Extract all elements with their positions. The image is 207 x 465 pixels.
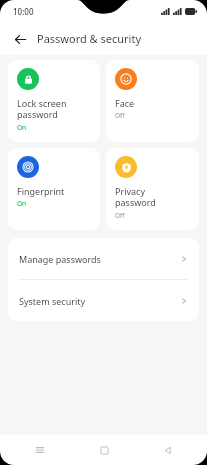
staticText: 10:00	[13, 6, 34, 17]
staticText: Off	[115, 211, 125, 220]
button[interactable]: Manage passwords	[8, 238, 199, 279]
staticText: On	[17, 123, 27, 132]
staticText: On	[17, 199, 27, 208]
staticText: Face	[115, 97, 135, 109]
staticText: Manage passwords	[19, 253, 180, 265]
staticText: Fingerprint	[17, 185, 65, 197]
button[interactable]: Face	[106, 60, 199, 142]
button[interactable]: Back	[9, 28, 31, 50]
button[interactable]: Privacy password	[106, 148, 199, 230]
staticText: Privacy password	[115, 185, 156, 209]
button[interactable]: Back	[144, 435, 190, 465]
button[interactable]: Home	[81, 435, 127, 465]
button[interactable]: Lock screen password	[8, 60, 100, 142]
staticText: System security	[19, 295, 180, 307]
button[interactable]: System security	[8, 280, 199, 321]
staticText: Lock screen password	[17, 97, 67, 121]
button[interactable]: Recent apps	[17, 435, 63, 465]
staticText: Password & security	[37, 31, 142, 46]
staticText: Off	[115, 111, 125, 120]
button[interactable]: Fingerprint	[8, 148, 100, 230]
